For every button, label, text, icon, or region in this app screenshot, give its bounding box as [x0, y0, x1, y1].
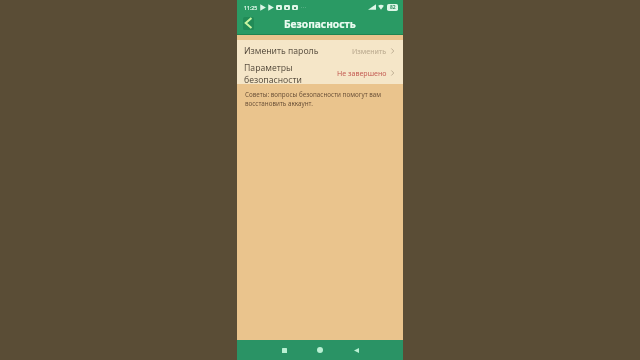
button[interactable]: Recent apps	[277, 343, 291, 357]
staticText: Параметры	[244, 62, 293, 74]
staticText: 82	[390, 4, 396, 11]
button[interactable]: Параметры	[237, 62, 403, 84]
staticText: Изменить	[352, 46, 387, 56]
staticText: безопасности	[244, 74, 302, 84]
staticText: 11:25	[244, 4, 258, 11]
button[interactable]: Home	[313, 343, 327, 357]
staticText: Безопасность	[284, 17, 356, 31]
button[interactable]: Back	[242, 16, 254, 30]
staticText: Изменить пароль	[244, 45, 319, 57]
button[interactable]: Back	[349, 343, 363, 357]
staticText: Советы: вопросы безопасности помогут вам…	[245, 90, 395, 107]
staticText: Не завершено	[337, 68, 387, 78]
button[interactable]: Изменить пароль	[237, 40, 403, 62]
